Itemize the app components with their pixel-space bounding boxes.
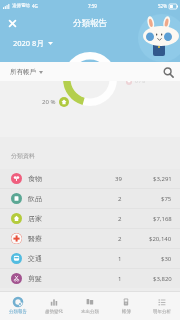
staticText: 0 / 8 <box>135 78 146 85</box>
button[interactable]: 分類報告 <box>0 292 36 320</box>
staticText: 支出分類 <box>81 309 99 315</box>
staticText: 2 <box>118 195 122 203</box>
staticText: 交通 <box>28 254 42 263</box>
staticText: 1 <box>118 275 122 283</box>
button[interactable]: 明年分析 <box>144 292 180 320</box>
staticText: 所有帳戶 <box>10 68 36 76</box>
staticText: 4G <box>32 3 38 9</box>
button[interactable]: Search <box>160 64 176 80</box>
staticText: 趨勢變化 <box>45 309 63 315</box>
staticText: $3,291 <box>153 175 172 183</box>
staticText: $7,168 <box>153 215 172 223</box>
staticText: 2 <box>118 235 122 243</box>
button[interactable]: 剪髮 <box>0 269 180 288</box>
staticText: 遠傳電信 <box>12 3 30 9</box>
button[interactable]: 交通 <box>0 249 180 268</box>
staticText: $3,820 <box>153 275 172 283</box>
staticText: 52% <box>158 3 167 9</box>
staticText: $20,140 <box>149 235 172 243</box>
button[interactable]: 居家 <box>0 209 180 228</box>
button[interactable]: 支出分類 <box>72 292 108 320</box>
staticText: $30 <box>161 255 172 263</box>
staticText: 39 <box>115 175 122 183</box>
staticText: $75 <box>161 195 172 203</box>
staticText: 分類報告 <box>9 309 27 315</box>
staticText: 明年分析 <box>153 309 171 315</box>
button[interactable]: 2020 8月 <box>11 36 55 50</box>
staticText: 食物 <box>28 174 42 183</box>
staticText: 分類資料 <box>11 152 35 160</box>
staticText: 7:59 <box>88 3 97 9</box>
button[interactable]: 趨勢變化 <box>36 292 72 320</box>
staticText: 20 % <box>42 98 56 106</box>
staticText: 帳簿 <box>122 309 131 315</box>
staticText: 2 <box>118 215 122 223</box>
button[interactable]: Close <box>0 11 24 35</box>
button[interactable]: 食物 <box>0 169 180 188</box>
button[interactable]: 帳簿 <box>108 292 144 320</box>
staticText: 1 <box>118 255 122 263</box>
staticText: 剪髮 <box>28 274 42 283</box>
staticText: 分類報告 <box>73 18 107 29</box>
button[interactable]: 飲品 <box>0 189 180 208</box>
staticText: 醫療 <box>28 234 42 243</box>
button[interactable]: 所有帳戶 <box>8 66 45 78</box>
staticText: 居家 <box>28 214 42 223</box>
button[interactable]: 醫療 <box>0 229 180 248</box>
staticText: 飲品 <box>28 194 42 203</box>
staticText: 2020 8月 <box>13 38 44 48</box>
